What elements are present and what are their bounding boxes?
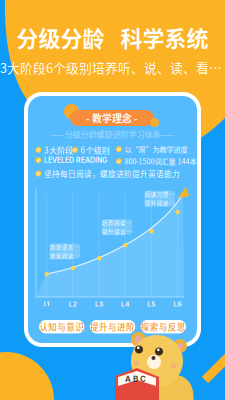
staticText: - 教学理念 - — [86, 111, 138, 125]
staticText: 3大阶段 — [44, 144, 73, 156]
staticText: 6个级别 — [80, 144, 109, 156]
staticText: 提升语言能力 — [102, 227, 132, 236]
staticText: 激发阅读兴趣 — [50, 251, 80, 260]
staticText: 800-1500词汇量 144本 — [124, 156, 196, 166]
staticText: L2 — [69, 300, 77, 308]
staticText: 3大阶段6个级别培养听、说、读、看语言习得 — [0, 58, 225, 77]
staticText: 以“周”为教学进度 — [124, 144, 187, 154]
staticText: 坚持每日阅读，螺旋进阶提升英语能力 — [44, 168, 180, 179]
staticText: L3 — [95, 300, 103, 308]
button[interactable]: 提升与进阶 — [90, 320, 135, 333]
staticText: 探索与反思 — [141, 320, 186, 333]
staticText: 提升与进阶 — [90, 320, 135, 333]
button[interactable]: 认知与意识 — [39, 320, 84, 333]
staticText: LEVELED READING — [44, 156, 107, 164]
staticText: L4 — [121, 300, 129, 308]
staticText: 激发语言意识 — [50, 242, 80, 251]
staticText: A B C — [125, 374, 146, 384]
staticText: 提升阅读能力 — [144, 199, 175, 207]
staticText: L5 — [147, 300, 155, 308]
staticText: 阅读习惯养成 — [144, 190, 175, 198]
button[interactable]: 探索与反思 — [141, 320, 186, 333]
staticText: 认知与意识 — [39, 320, 84, 333]
staticText: 培养阅读兴趣 — [102, 218, 132, 227]
staticText: L1 — [43, 300, 49, 308]
staticText: 科学系统 — [120, 21, 208, 53]
staticText: ——分级分龄螺旋进阶学习体系—— — [50, 128, 174, 140]
staticText: 分级分龄 — [16, 21, 104, 53]
staticText: L6 — [173, 300, 181, 308]
